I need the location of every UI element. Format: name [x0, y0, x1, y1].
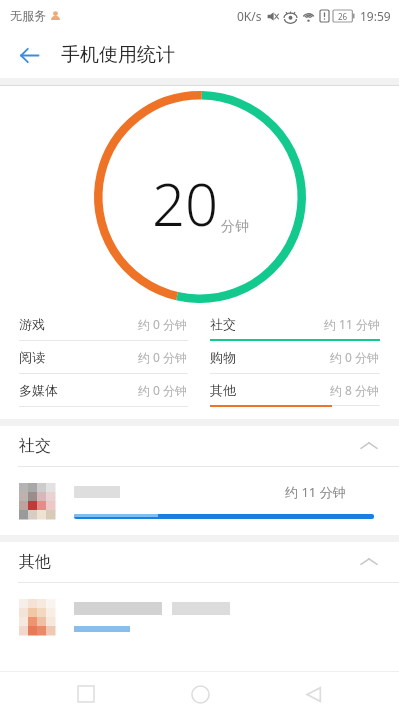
staticText: 约 8 分钟 [330, 382, 380, 398]
staticText: 游戏 [19, 316, 45, 332]
button[interactable]: Home [172, 672, 228, 716]
staticText: 阅读 [19, 349, 45, 365]
staticText: 分钟 [221, 218, 249, 236]
button[interactable]: Back [285, 672, 341, 716]
staticText: 约 11 分钟 [324, 316, 380, 332]
button[interactable]: Recent apps [58, 672, 114, 716]
staticText: 0K/s [237, 8, 262, 24]
staticText: 多媒体 [19, 382, 58, 398]
staticText: 约 0 分钟 [138, 316, 188, 332]
button[interactable]: 多媒体 [19, 374, 188, 407]
staticText: 其他 [19, 552, 51, 572]
staticText: 社交 [19, 436, 51, 456]
staticText: 约 0 分钟 [138, 349, 188, 365]
staticText: 26 [338, 11, 348, 22]
button[interactable]: 其他 [210, 374, 380, 407]
button[interactable]: 购物 [210, 341, 380, 374]
staticText: 约 0 分钟 [138, 382, 188, 398]
button[interactable] [0, 583, 399, 651]
staticText: 19:59 [360, 8, 391, 24]
staticText: 其他 [210, 382, 236, 398]
staticText: 购物 [210, 349, 236, 365]
staticText: 手机使用统计 [61, 43, 175, 67]
button[interactable]: Back [12, 38, 46, 72]
staticText: 20 [152, 164, 219, 243]
staticText: 约 0 分钟 [330, 349, 380, 365]
staticText: 社交 [210, 316, 236, 332]
button[interactable]: 游戏 [19, 308, 188, 341]
button[interactable]: 社交 [210, 308, 380, 341]
button[interactable]: 社交 [0, 426, 399, 466]
button[interactable]: 其他 [0, 542, 399, 582]
staticText: 无服务 [10, 8, 46, 23]
staticText: 约 11 分钟 [285, 483, 346, 501]
button[interactable]: 阅读 [19, 341, 188, 374]
button[interactable]: 约 11 分钟 [0, 467, 399, 535]
